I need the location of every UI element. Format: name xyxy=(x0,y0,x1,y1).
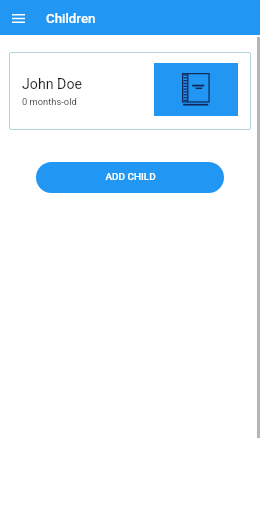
staticText: 0 months-old xyxy=(22,96,77,107)
staticText: John Doe xyxy=(22,76,83,93)
button[interactable]: ADD CHILD xyxy=(36,162,224,193)
staticText: Children xyxy=(46,11,96,27)
staticText: ADD CHILD xyxy=(105,171,156,183)
button[interactable]: John Doe xyxy=(9,52,251,130)
button[interactable]: Open navigation menu xyxy=(6,6,30,30)
